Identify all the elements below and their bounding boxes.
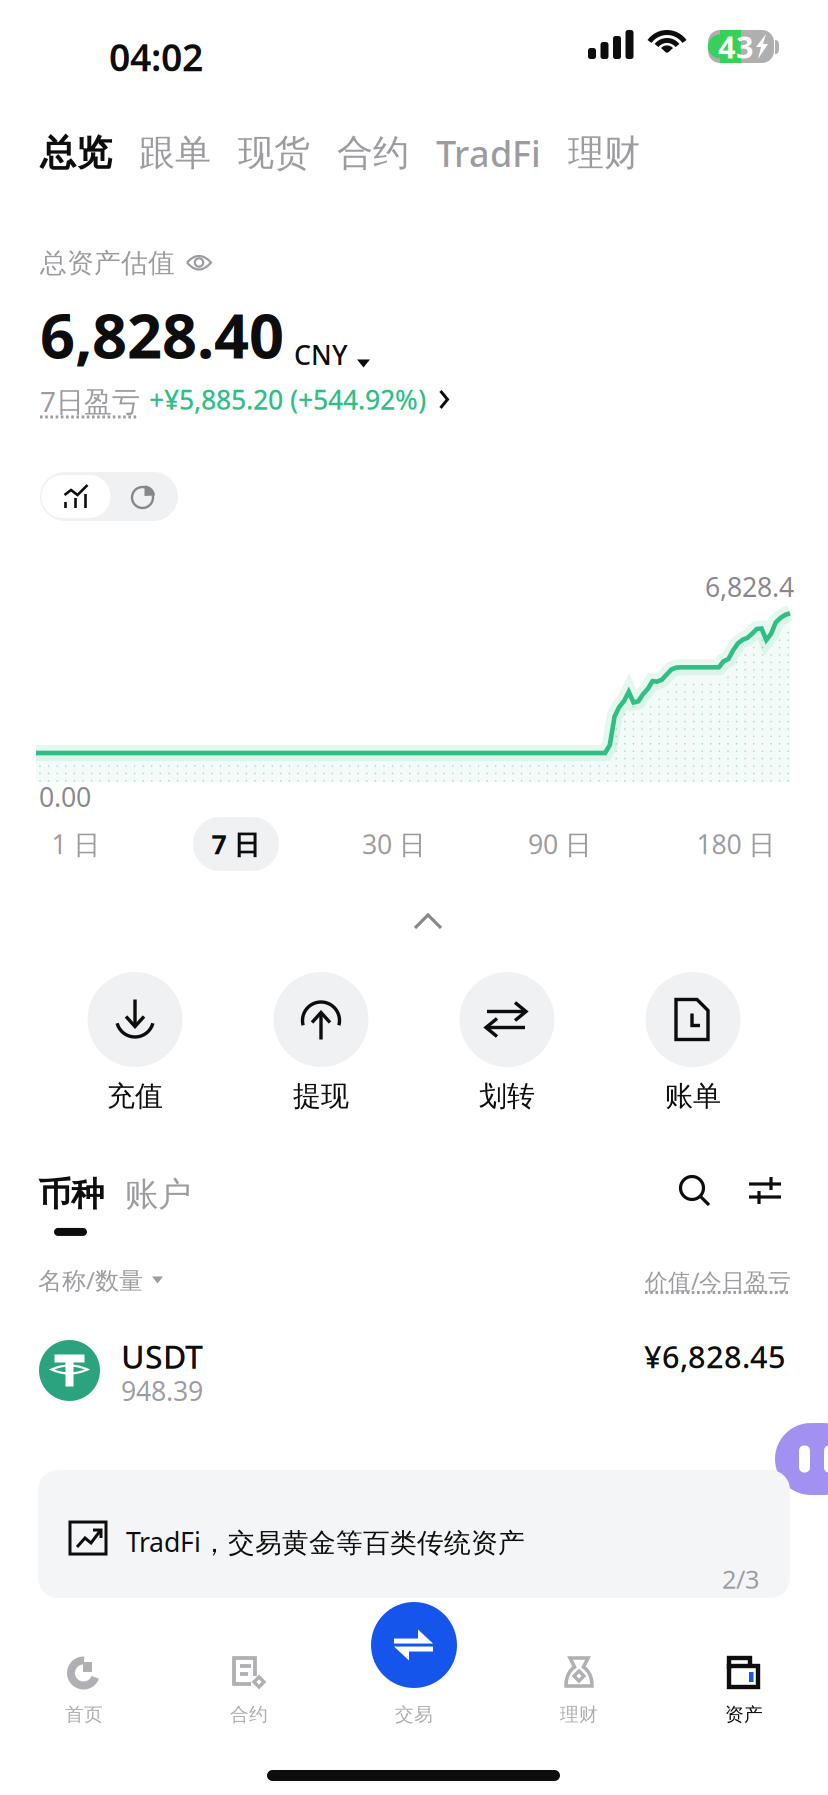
staticText: 2/3 (722, 1562, 759, 1596)
button[interactable]: 首页 (1, 1645, 166, 1753)
staticText: 90 日 (528, 826, 592, 862)
button[interactable]: 跟单 (139, 131, 211, 175)
staticText: 7日盈亏 (40, 382, 140, 420)
button[interactable]: 1 日 (33, 817, 119, 871)
staticText: 7 日 (211, 826, 260, 862)
staticText: 账单 (665, 1079, 721, 1113)
staticText: 948.39 (121, 1373, 203, 1408)
button[interactable]: Collapse (399, 898, 457, 945)
staticText: 合约 (337, 131, 409, 175)
button[interactable]: 划转 (437, 972, 577, 1113)
staticText: 30 日 (362, 826, 426, 862)
staticText: 现货 (238, 131, 310, 175)
button[interactable]: 30 日 (351, 817, 437, 871)
staticText: 理财 (568, 131, 640, 175)
staticText: 总资产估值 (40, 247, 175, 279)
staticText: 合约 (230, 1703, 268, 1726)
staticText: +¥5,885.20 (+544.92%) (149, 382, 426, 417)
button[interactable]: TradFi，交易黄金等百类传统资产 (38, 1470, 790, 1598)
button[interactable]: 资产 (661, 1645, 826, 1753)
button[interactable]: 价值/今日盈亏 (645, 1266, 790, 1294)
staticText: 跟单 (139, 131, 211, 175)
button[interactable]: 名称/数量 (38, 1264, 163, 1296)
button[interactable]: 理财 (496, 1645, 661, 1753)
button[interactable]: Line chart (41, 475, 110, 518)
staticText: TradFi (436, 129, 541, 177)
button[interactable]: 90 日 (517, 817, 603, 871)
staticText: 充值 (107, 1079, 163, 1113)
staticText: 43 (718, 26, 754, 67)
staticText: 180 日 (696, 826, 775, 862)
staticText: 价值/今日盈亏 (645, 1266, 791, 1296)
button[interactable]: 现货 (238, 131, 310, 175)
button[interactable]: 合约 (337, 131, 409, 175)
button[interactable]: 交易 (331, 1645, 496, 1753)
staticText: 6,828.4 (705, 569, 794, 604)
button[interactable]: USDT (0, 1320, 828, 1420)
staticText: 1 日 (51, 826, 100, 862)
button[interactable]: 账户 (125, 1174, 191, 1215)
staticText: USDT (121, 1335, 203, 1377)
staticText: ¥6,828.45 (644, 1336, 786, 1377)
button[interactable]: Pie chart (110, 475, 176, 518)
staticText: TradFi，交易黄金等百类传统资产 (126, 1524, 525, 1560)
button[interactable]: Search (678, 1174, 712, 1208)
button[interactable]: 7 日 (193, 817, 279, 871)
button[interactable]: 币种 (38, 1174, 104, 1236)
button[interactable]: 6,828.40 (40, 294, 370, 375)
staticText: 总览 (40, 131, 112, 175)
staticText: 04:02 (109, 32, 203, 82)
staticText: 划转 (479, 1079, 535, 1113)
staticText: 账户 (125, 1174, 191, 1215)
button[interactable]: 充值 (65, 972, 205, 1113)
staticText: 名称/数量 (38, 1264, 143, 1296)
staticText: CNY (294, 337, 348, 372)
staticText: 交易 (395, 1703, 433, 1726)
staticText: 首页 (65, 1703, 103, 1726)
staticText: 0.00 (39, 779, 91, 814)
button[interactable]: 7日盈亏 (40, 382, 449, 416)
button[interactable]: 账单 (623, 972, 763, 1113)
staticText: 币种 (38, 1174, 104, 1215)
staticText: 提现 (293, 1079, 349, 1113)
button[interactable]: TradFi (436, 129, 541, 177)
button[interactable]: 总览 (40, 131, 112, 175)
button[interactable]: 总资产估值 (40, 246, 212, 280)
staticText: 理财 (560, 1703, 598, 1726)
staticText: 6,828.40 (40, 294, 284, 375)
button[interactable]: 理财 (568, 131, 640, 175)
button[interactable]: 合约 (166, 1645, 331, 1753)
button[interactable]: Filter (748, 1174, 782, 1207)
button[interactable]: 180 日 (693, 817, 779, 871)
staticText: 资产 (725, 1703, 763, 1726)
button[interactable]: 提现 (251, 972, 391, 1113)
